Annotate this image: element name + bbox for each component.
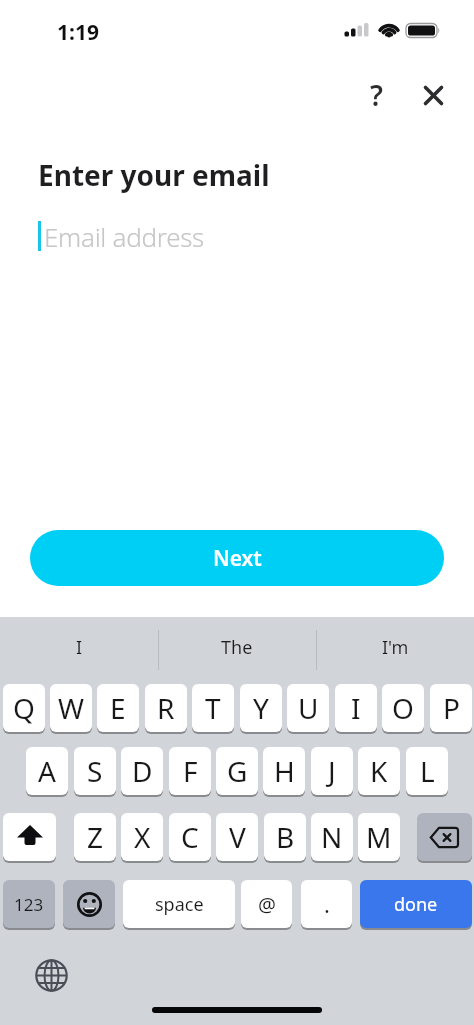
staticText: Q [13,689,35,727]
button[interactable]: I'm [316,617,474,677]
button[interactable]: J [311,747,353,795]
button[interactable]: A [26,747,68,795]
button[interactable]: I [0,617,158,677]
button[interactable]: . [301,880,352,928]
button[interactable]: X [121,813,163,861]
button[interactable] [411,73,455,117]
button[interactable]: H [263,747,305,795]
button[interactable]: F [169,747,211,795]
staticText: U [298,689,319,727]
button[interactable] [63,880,115,928]
button[interactable]: B [264,813,306,861]
button[interactable]: R [145,684,187,732]
staticText: N [321,818,343,856]
button[interactable] [3,813,56,861]
button[interactable]: done [360,880,472,928]
staticText: L [420,752,435,790]
staticText: D [132,752,153,790]
button[interactable]: O [382,684,424,732]
button[interactable]: 123 [3,880,55,928]
button[interactable]: K [358,747,400,795]
staticText: Enter your email [38,156,270,194]
button[interactable]: W [50,684,92,732]
staticText: O [392,689,414,727]
staticText: I [76,635,83,660]
button[interactable]: C [169,813,211,861]
staticText: M [366,818,392,856]
button[interactable]: T [192,684,234,732]
staticText: R [157,689,175,727]
button[interactable]: N [311,813,353,861]
staticText: H [274,752,295,790]
staticText: I [351,689,361,727]
button[interactable]: U [287,684,329,732]
staticText: P [443,689,460,727]
staticText: J [328,752,336,790]
staticText: Z [87,818,104,856]
button[interactable]: Q [3,684,45,732]
staticText: The [221,635,253,660]
staticText: G [227,752,248,790]
button[interactable]: I [335,684,377,732]
button[interactable]: S [74,747,116,795]
button[interactable]: Z [74,813,116,861]
button[interactable]: E [97,684,139,732]
staticText: F [183,752,198,790]
staticText: Email address [44,219,204,254]
staticText: S [87,752,103,790]
button[interactable]: D [121,747,163,795]
button[interactable]: ? [354,73,398,117]
staticText: T [205,689,221,727]
staticText: C [181,818,199,856]
staticText: K [370,752,388,790]
staticText: space [155,892,204,917]
button[interactable]: The [158,617,316,677]
staticText: A [38,752,56,790]
staticText: V [229,818,246,856]
button[interactable]: @ [241,880,292,928]
staticText: . [324,889,330,919]
staticText: Y [253,689,269,727]
button[interactable]: L [406,747,448,795]
button[interactable]: G [216,747,258,795]
button[interactable] [29,953,73,997]
button[interactable] [417,813,472,861]
staticText: W [58,689,85,727]
button[interactable]: Next [30,530,444,586]
staticText: ? [370,76,383,114]
staticText: E [110,689,126,727]
staticText: B [276,818,295,856]
staticText: 123 [14,893,44,916]
button[interactable]: space [123,880,235,928]
button[interactable]: Y [240,684,282,732]
staticText: done [394,892,438,917]
staticText: @ [258,891,276,918]
staticText: 1:19 [57,18,99,47]
button[interactable]: P [430,684,472,732]
staticText: Next [213,544,262,573]
button[interactable]: V [216,813,258,861]
button[interactable]: M [358,813,400,861]
staticText: X [134,818,151,856]
staticText: I'm [382,635,409,660]
